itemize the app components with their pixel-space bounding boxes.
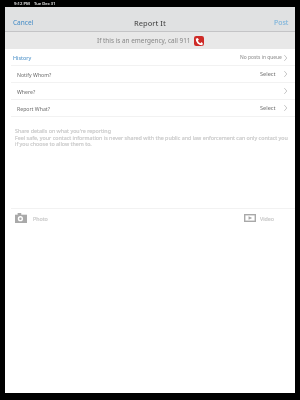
staticText: Post bbox=[274, 18, 289, 28]
staticText: Video bbox=[260, 215, 274, 222]
button[interactable]: Report What? bbox=[5, 100, 295, 116]
staticText: Notify Whom? bbox=[17, 71, 52, 78]
staticText: Share details on what you're reporting bbox=[15, 127, 111, 134]
staticText: Select bbox=[260, 104, 276, 112]
staticText: 9:12 PM bbox=[14, 1, 30, 7]
staticText: Report It bbox=[134, 18, 166, 28]
staticText: Where? bbox=[17, 88, 36, 95]
other: Add video bbox=[244, 214, 256, 222]
staticText: Tue Dec 31 bbox=[34, 1, 56, 7]
button[interactable]: Call 911 bbox=[194, 36, 204, 46]
staticText: Feel safe, your contact information is n… bbox=[15, 134, 288, 147]
staticText: Report What? bbox=[17, 105, 50, 112]
other: Add photo bbox=[15, 213, 27, 223]
staticText: Cancel bbox=[13, 18, 34, 27]
button[interactable]: Notify Whom? bbox=[5, 66, 295, 82]
button[interactable]: Post bbox=[266, 14, 295, 32]
button[interactable]: Cancel bbox=[5, 14, 42, 31]
staticText: History bbox=[13, 54, 32, 61]
staticText: No posts in queue bbox=[240, 54, 282, 61]
staticText: If this is an emergency, call 911 bbox=[97, 36, 191, 45]
button[interactable]: History bbox=[5, 49, 295, 65]
staticText: Select bbox=[260, 70, 276, 78]
button[interactable]: Add photo bbox=[5, 210, 56, 226]
staticText: Photo bbox=[33, 215, 48, 222]
button[interactable]: Add video bbox=[236, 211, 295, 225]
button[interactable]: Where? bbox=[5, 83, 295, 99]
